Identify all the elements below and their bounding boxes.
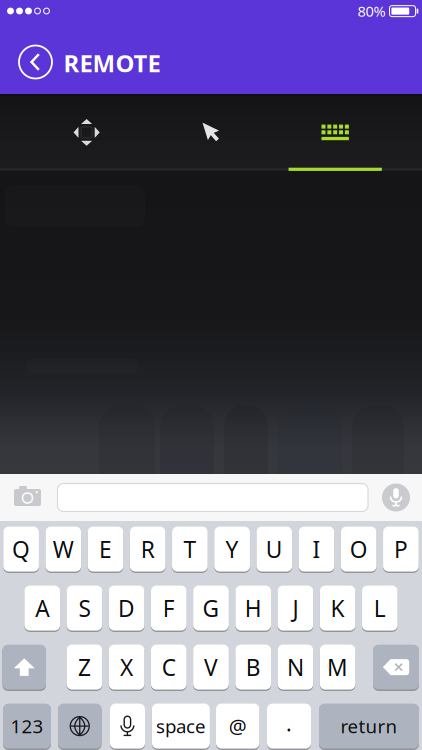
button[interactable]: H [235, 585, 271, 631]
button[interactable]: D [109, 585, 144, 631]
staticText: REMOTE [63, 47, 160, 79]
staticText: R [141, 534, 155, 564]
staticText: S [78, 593, 90, 623]
button[interactable]: Trackpad [24, 97, 149, 167]
button[interactable]: space [152, 703, 210, 749]
button[interactable]: Text field [57, 483, 368, 511]
staticText: B [246, 652, 261, 682]
staticText: E [99, 534, 112, 564]
button[interactable]: N [277, 644, 313, 690]
button[interactable]: P [383, 526, 419, 572]
button[interactable]: V [193, 644, 229, 690]
button[interactable]: G [193, 585, 229, 631]
button[interactable]: Y [214, 526, 250, 572]
button[interactable]: I [299, 526, 334, 572]
button[interactable]: O [341, 526, 377, 572]
button[interactable]: U [256, 526, 292, 572]
button[interactable]: 123 [3, 703, 51, 749]
button[interactable]: M [320, 644, 355, 690]
staticText: 123 [10, 714, 43, 738]
staticText: 80% [357, 1, 385, 21]
button[interactable]: F [151, 585, 187, 631]
staticText: O [350, 534, 368, 564]
button[interactable]: X [109, 644, 144, 690]
staticText: P [394, 534, 408, 564]
button[interactable]: K [320, 585, 355, 631]
staticText: Y [226, 534, 239, 564]
button[interactable]: C [151, 644, 187, 690]
button[interactable]: Shift [2, 644, 46, 690]
button[interactable]: @ [216, 703, 259, 749]
staticText: I [312, 534, 320, 564]
staticText: T [183, 534, 196, 564]
button[interactable]: Next keyboard [58, 703, 101, 749]
staticText: C [162, 652, 176, 682]
button[interactable]: Back [15, 42, 55, 82]
staticText: U [266, 534, 283, 564]
staticText: W [53, 534, 74, 564]
button[interactable]: T [172, 526, 208, 572]
staticText: A [35, 593, 49, 623]
staticText: M [327, 652, 348, 682]
button[interactable]: Pointer [149, 97, 273, 167]
button[interactable]: Dictate [110, 703, 145, 749]
staticText: G [202, 593, 219, 623]
staticText: D [118, 593, 135, 623]
button[interactable]: R [130, 526, 166, 572]
button[interactable]: L [362, 585, 398, 631]
staticText: X [120, 652, 133, 682]
staticText: Q [12, 534, 30, 564]
button[interactable]: E [88, 526, 123, 572]
button[interactable]: Camera [5, 477, 49, 517]
button[interactable]: return [319, 703, 419, 749]
staticText: L [374, 593, 386, 623]
staticText: J [292, 593, 298, 623]
staticText: K [331, 593, 345, 623]
button[interactable]: Q [3, 526, 39, 572]
button[interactable]: A [24, 585, 60, 631]
staticText: F [163, 593, 175, 623]
staticText: return [340, 714, 397, 738]
button[interactable]: Dictate [376, 477, 416, 517]
staticText: Z [78, 652, 91, 682]
staticText: space [156, 714, 206, 738]
button[interactable]: B [235, 644, 271, 690]
button[interactable]: Z [67, 644, 102, 690]
button[interactable]: S [67, 585, 102, 631]
button[interactable]: W [45, 526, 81, 572]
staticText: . [286, 709, 292, 737]
staticText: @ [229, 713, 247, 739]
staticText: V [204, 652, 218, 682]
button[interactable]: Delete [373, 644, 419, 690]
button[interactable]: Keyboard [273, 97, 397, 167]
button[interactable]: J [278, 585, 313, 631]
button[interactable]: . [267, 703, 311, 749]
staticText: H [245, 593, 262, 623]
staticText: N [287, 652, 304, 682]
